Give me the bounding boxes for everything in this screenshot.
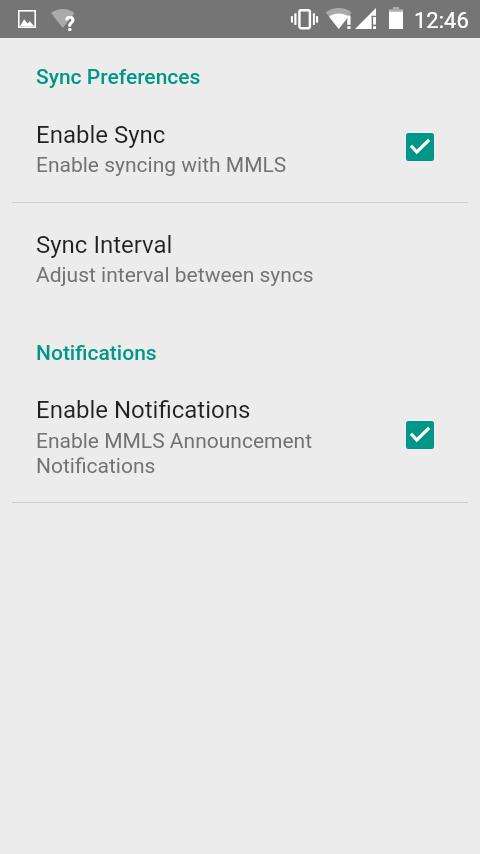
other: Wi-Fi, no internet: [50, 9, 76, 28]
other: Wi-Fi signal: [326, 8, 352, 29]
staticText: Enable Sync: [36, 121, 166, 149]
other: Ringer vibrate: [290, 9, 319, 30]
button[interactable]: Enable Sync: [0, 110, 480, 201]
button[interactable]: Checkbox, checked: [406, 133, 434, 161]
button[interactable]: Enable Notifications: [0, 385, 480, 501]
staticText: Sync Interval: [36, 231, 173, 259]
button[interactable]: Checkbox, checked: [406, 421, 434, 449]
other: Mobile signal: [355, 8, 376, 29]
staticText: 12:46: [414, 8, 469, 34]
staticText: Enable MMLS Announcement Notifications: [36, 429, 313, 479]
staticText: Sync Preferences: [36, 65, 201, 90]
staticText: ?: [65, 12, 75, 35]
staticText: Enable Notifications: [36, 396, 251, 424]
other: Screenshot captured: [18, 10, 36, 28]
staticText: Enable syncing with MMLS: [36, 153, 287, 178]
staticText: Adjust interval between syncs: [36, 263, 314, 288]
other: Battery full: [389, 7, 403, 29]
button[interactable]: Sync Interval: [0, 203, 480, 300]
staticText: Notifications: [36, 341, 157, 366]
